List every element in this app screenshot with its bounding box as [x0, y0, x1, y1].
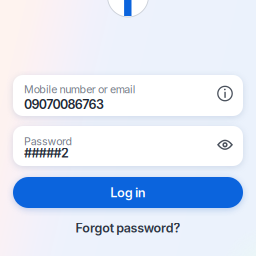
staticText: #####2 [24, 145, 69, 161]
staticText: Password [24, 135, 73, 148]
staticText: 09070086763 [24, 97, 104, 112]
staticText: Log in [110, 185, 146, 200]
staticText: Mobile number or email [24, 83, 136, 96]
button[interactable]: Forgot password? [13, 216, 243, 240]
button[interactable]: Log in [13, 177, 243, 208]
staticText: Forgot password? [76, 220, 180, 236]
